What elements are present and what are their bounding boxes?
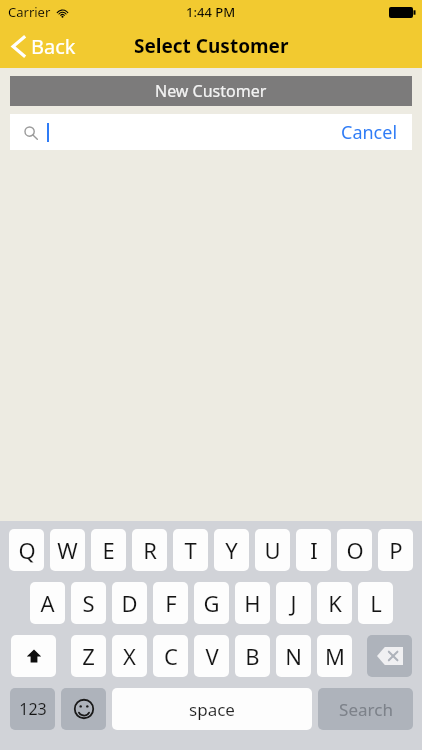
staticText: L [370,588,382,618]
button[interactable]: V [194,635,229,677]
button[interactable]: 123 [10,688,55,730]
button[interactable]: F [153,582,188,624]
staticText: Q [18,535,36,565]
staticText: I [310,535,318,565]
staticText: R [143,535,157,565]
staticText: K [328,588,342,618]
button[interactable]: B [235,635,270,677]
staticText: A [40,588,55,618]
button[interactable]: C [153,635,188,677]
staticText: Z [82,641,95,671]
button[interactable]: space [112,688,312,730]
button[interactable]: R [132,529,167,571]
staticText: F [165,588,177,618]
staticText: Carrier [8,3,51,21]
staticText: space [189,698,235,721]
staticText: V [205,641,219,671]
button[interactable]: L [358,582,393,624]
button[interactable]: E [91,529,126,571]
staticText: P [389,535,403,565]
staticText: W [57,535,78,565]
button[interactable]: Shift [11,635,56,677]
staticText: E [102,535,115,565]
staticText: U [264,535,281,565]
button[interactable]: G [194,582,229,624]
button[interactable]: K [317,582,352,624]
button[interactable]: A [30,582,65,624]
button[interactable]: Cancel [327,114,412,150]
button[interactable]: M [317,635,352,677]
staticText: C [164,641,178,671]
staticText: B [245,641,260,671]
staticText: S [82,588,95,618]
staticText: G [203,588,220,618]
staticText: N [285,641,302,671]
staticText: O [346,535,364,565]
staticText: H [244,588,261,618]
button[interactable]: X [112,635,147,677]
staticText: M [325,641,345,671]
button[interactable]: D [112,582,147,624]
staticText: T [184,535,197,565]
button[interactable]: I [296,529,331,571]
button[interactable]: T [173,529,208,571]
staticText: 1:44 PM [186,3,236,21]
staticText: Select Customer [134,33,289,59]
button[interactable]: Q [9,529,44,571]
staticText: Cancel [341,120,398,145]
button[interactable]: Backspace [367,635,412,677]
staticText: Back [31,33,76,60]
button[interactable]: New Customer [10,76,412,106]
button[interactable]: J [276,582,311,624]
button[interactable]: Z [71,635,106,677]
button[interactable]: W [50,529,85,571]
button[interactable]: Search [318,688,413,730]
button[interactable]: Emoji [61,688,106,730]
button[interactable]: H [235,582,270,624]
button[interactable]: P [378,529,413,571]
staticText: X [123,641,136,671]
button[interactable]: O [337,529,372,571]
button[interactable]: S [71,582,106,624]
staticText: J [290,588,297,618]
staticText: Search [339,698,393,721]
button[interactable]: N [276,635,311,677]
button[interactable]: Back [0,24,86,68]
staticText: 123 [19,698,47,720]
staticText: Y [225,535,238,565]
staticText: D [121,588,138,618]
staticText: New Customer [155,80,267,102]
button[interactable]: Y [214,529,249,571]
button[interactable]: U [255,529,290,571]
